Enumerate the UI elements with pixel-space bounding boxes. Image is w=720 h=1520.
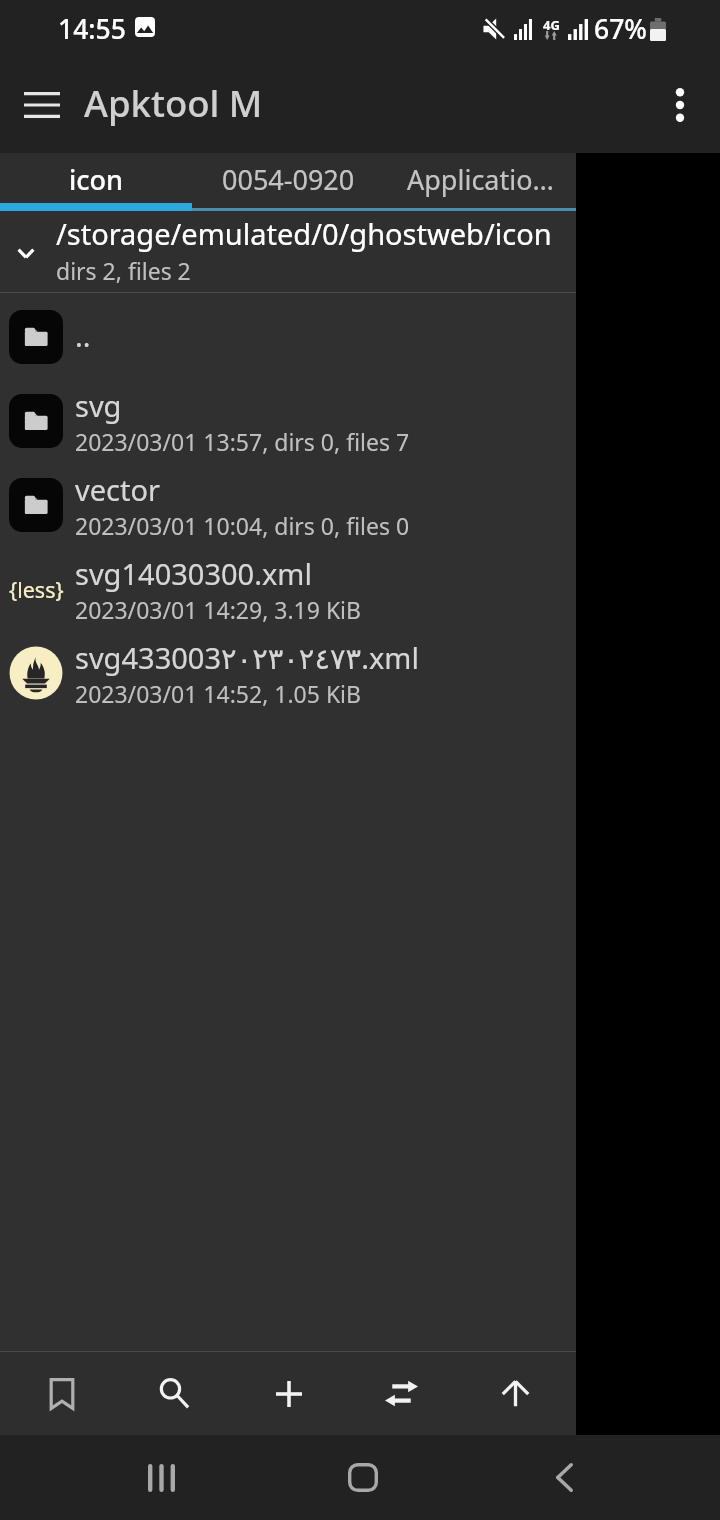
staticText: 67% bbox=[594, 11, 647, 47]
staticText: dirs 2, files 2 bbox=[56, 255, 191, 286]
button[interactable]: svg433003٢٠٢٣٠٢٤٧٣.xml bbox=[0, 631, 576, 715]
button[interactable]: icon bbox=[0, 153, 192, 211]
staticText: svg bbox=[75, 386, 122, 425]
button[interactable]: /storage/emulated/0/ghostweb/icon bbox=[0, 211, 576, 292]
staticText: 4G bbox=[543, 16, 559, 34]
staticText: svg14030300.xml bbox=[75, 554, 312, 593]
button[interactable]: Add bbox=[236, 1352, 341, 1435]
staticText: 2023/03/01 14:29, 3.19 KiB bbox=[75, 594, 362, 625]
button[interactable]: {less} bbox=[0, 547, 576, 631]
staticText: .. bbox=[75, 316, 91, 355]
staticText: svg433003٢٠٢٣٠٢٤٧٣.xml bbox=[75, 638, 419, 677]
staticText: 2023/03/01 14:52, 1.05 KiB bbox=[75, 678, 362, 709]
button[interactable]: Applicatio… bbox=[384, 153, 576, 211]
button[interactable]: svg bbox=[0, 379, 576, 463]
button[interactable]: Transfer bbox=[349, 1352, 454, 1435]
staticText: 2023/03/01 10:04, dirs 0, files 0 bbox=[75, 510, 410, 541]
button[interactable]: 0054-0920 bbox=[192, 153, 384, 211]
staticText: vector bbox=[75, 470, 160, 509]
button[interactable]: Bookmarks bbox=[9, 1352, 114, 1435]
staticText: 14:55 bbox=[58, 11, 126, 47]
staticText: Applicatio… bbox=[407, 161, 554, 198]
staticText: {less} bbox=[9, 575, 63, 604]
button[interactable]: vector bbox=[0, 463, 576, 547]
button[interactable]: Home bbox=[303, 1435, 423, 1520]
button[interactable]: Recent apps bbox=[101, 1435, 221, 1520]
button[interactable]: Go up bbox=[463, 1352, 568, 1435]
button[interactable]: More options bbox=[652, 77, 708, 133]
button[interactable]: Search bbox=[122, 1352, 227, 1435]
button[interactable]: .. bbox=[0, 295, 576, 379]
button[interactable]: Navigation menu bbox=[14, 77, 70, 133]
staticText: Apktool M bbox=[84, 78, 263, 128]
staticText: 2023/03/01 13:57, dirs 0, files 7 bbox=[75, 426, 410, 457]
staticText: 0054-0920 bbox=[222, 161, 355, 198]
staticText: icon bbox=[69, 161, 123, 198]
button[interactable]: Back bbox=[504, 1435, 624, 1520]
staticText: /storage/emulated/0/ghostweb/icon bbox=[56, 214, 552, 253]
